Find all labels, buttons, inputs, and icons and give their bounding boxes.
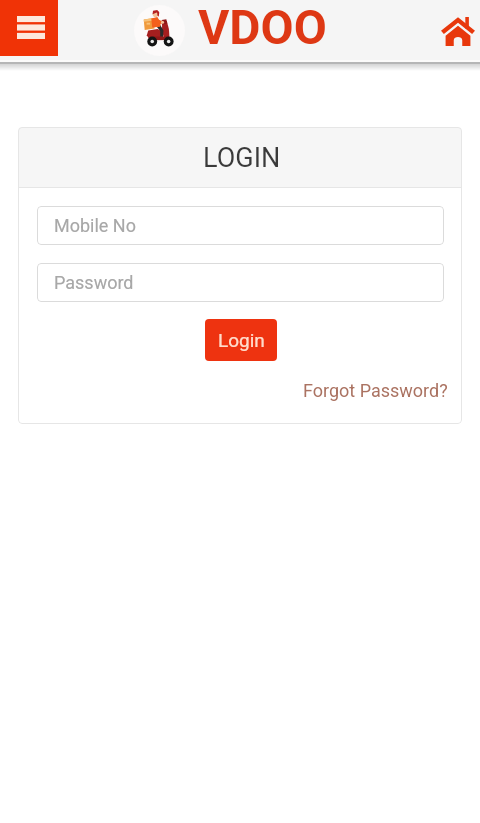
staticText: VDOO xyxy=(198,0,327,55)
staticText: LOGIN xyxy=(203,142,281,174)
button[interactable]: Forgot Password? xyxy=(303,380,448,401)
staticText: Forgot Password? xyxy=(303,380,448,401)
button[interactable]: Mobile No xyxy=(37,206,444,245)
button[interactable]: Login xyxy=(205,319,277,361)
staticText: Login xyxy=(218,329,265,351)
staticText: Password xyxy=(54,272,134,293)
button[interactable]: Menu xyxy=(0,0,58,56)
button[interactable]: Home xyxy=(434,7,480,55)
button[interactable]: Password xyxy=(37,263,444,302)
staticText: Mobile No xyxy=(54,215,136,236)
